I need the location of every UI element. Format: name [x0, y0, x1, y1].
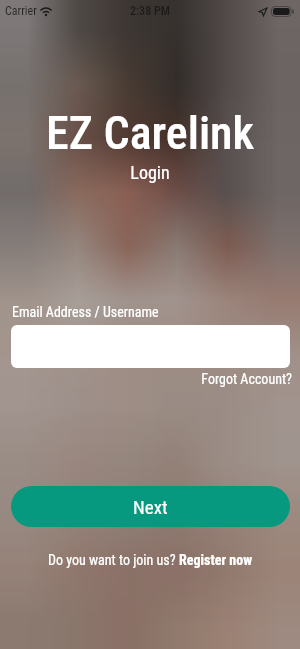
staticText: Next [133, 496, 168, 518]
staticText: Email Address / Username [12, 304, 159, 320]
staticText: 2:38 PM [130, 4, 170, 18]
staticText: Carrier [5, 4, 37, 18]
button[interactable]: Forgot Account? [0, 371, 292, 387]
staticText: Do you want to join us? [48, 552, 179, 568]
staticText: Login [0, 162, 300, 183]
button[interactable]: Register now [179, 552, 252, 568]
button[interactable]: Next [11, 486, 290, 527]
button[interactable] [11, 325, 290, 368]
staticText: EZ Carelink [0, 106, 300, 160]
